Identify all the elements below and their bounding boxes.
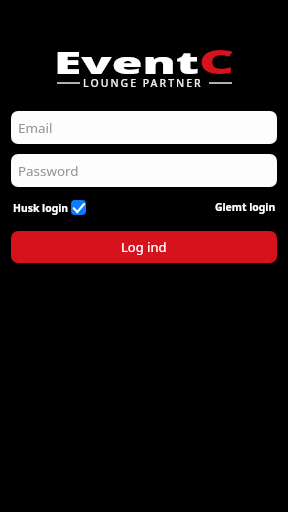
staticText: Password <box>18 162 79 180</box>
staticText: EventC <box>54 39 235 77</box>
staticText: Glemt login <box>215 200 276 214</box>
staticText: Email <box>18 119 53 137</box>
staticText: Husk login <box>13 201 69 215</box>
button[interactable]: Email <box>11 111 277 144</box>
button[interactable]: Glemt login <box>215 200 276 214</box>
staticText: Log ind <box>121 238 167 256</box>
button[interactable]: Log ind <box>11 231 277 263</box>
staticText: LOUNGE PARTNER <box>83 76 203 90</box>
button[interactable]: Husk login <box>13 200 86 215</box>
button[interactable]: Password <box>11 154 277 187</box>
